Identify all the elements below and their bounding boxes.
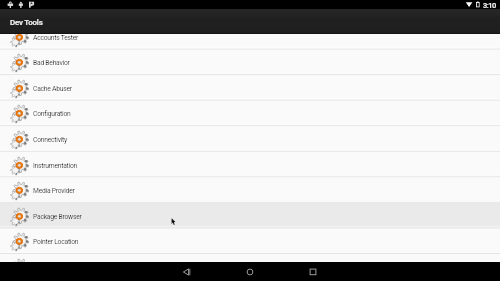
button[interactable]: Power Control (0, 254, 500, 262)
button[interactable]: Pointer Location (0, 228, 500, 254)
staticText: Package Browser (33, 213, 82, 221)
staticText: Dev Tools (10, 18, 43, 27)
button[interactable]: Cache Abuser (0, 75, 500, 101)
staticText: Bad Behavior (33, 59, 70, 67)
staticText: Accounts Tester (33, 34, 79, 42)
button[interactable]: Configuration (0, 100, 500, 126)
staticText: Media Provider (33, 187, 75, 195)
button[interactable]: Back (155, 262, 218, 281)
staticText: Pointer Location (33, 238, 79, 246)
staticText: 3:10 (483, 1, 496, 10)
button[interactable]: Package Browser (0, 203, 500, 229)
button[interactable]: Accounts Tester (0, 24, 500, 50)
button[interactable]: Bad Behavior (0, 49, 500, 75)
button[interactable]: Instrumentation (0, 152, 500, 178)
button[interactable]: Recents (281, 262, 344, 281)
staticText: Connectivity (33, 136, 67, 144)
button[interactable]: Media Provider (0, 177, 500, 203)
staticText: Cache Abuser (33, 85, 72, 93)
button[interactable]: Home (218, 262, 281, 281)
button[interactable]: Connectivity (0, 126, 500, 152)
staticText: Instrumentation (33, 162, 78, 170)
staticText: Configuration (33, 110, 71, 118)
